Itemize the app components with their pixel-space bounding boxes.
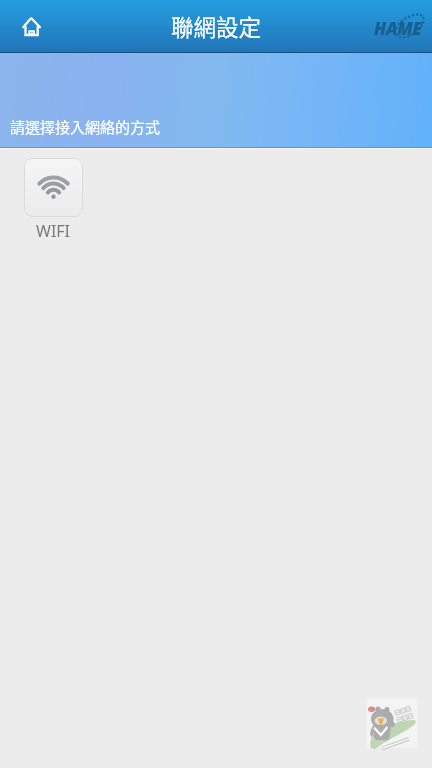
staticText: 聯網設定 xyxy=(171,10,262,43)
staticText: HAME xyxy=(374,17,422,40)
staticText: 請選擇接入網絡的方式 xyxy=(10,116,161,138)
button[interactable]: Home xyxy=(10,4,54,48)
staticText: WIFI xyxy=(36,220,71,242)
button[interactable]: WIFI xyxy=(24,158,83,242)
